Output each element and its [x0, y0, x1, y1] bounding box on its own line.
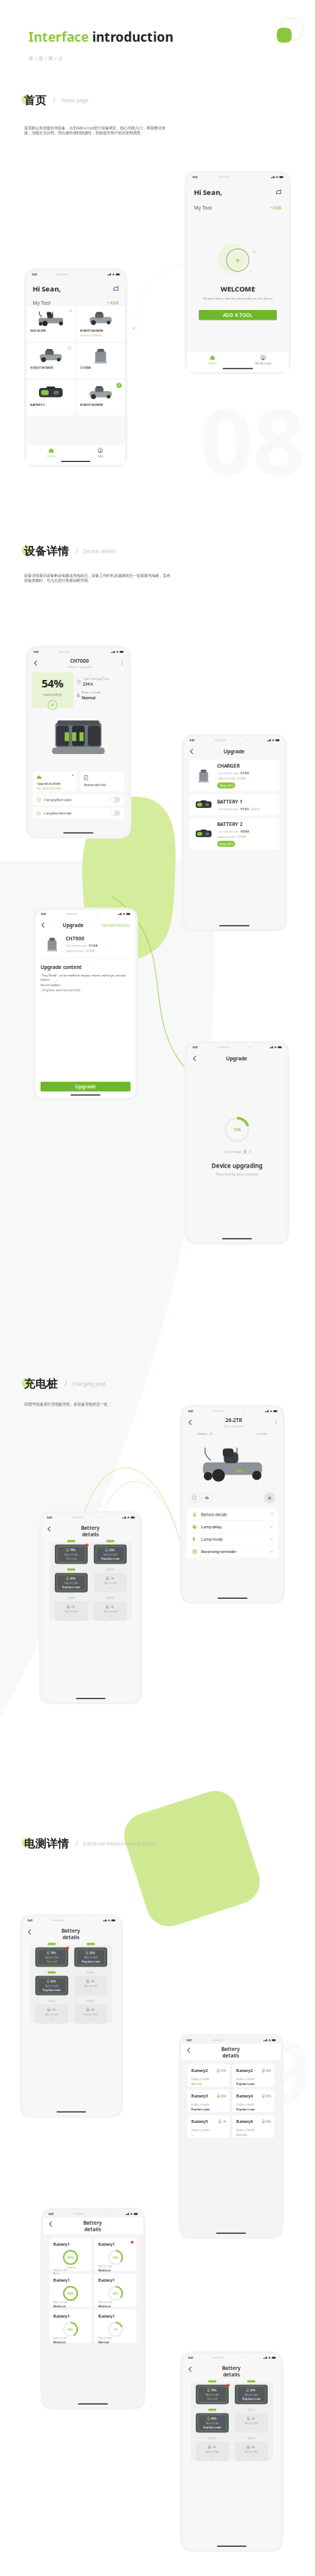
button[interactable]: Battery details: [187, 1509, 278, 1521]
button[interactable]: Battery4: [232, 2090, 274, 2112]
staticText: Current version: [66, 944, 87, 948]
button[interactable]: Battery3: [187, 2090, 229, 2112]
staticText: Battery health: [191, 2102, 209, 2106]
staticText: Battery health: [98, 2337, 112, 2339]
staticText: CH7000: [66, 935, 84, 942]
button[interactable]: ROBOT MOWER: [77, 380, 125, 415]
button[interactable]: Lamp delay: [187, 1521, 278, 1533]
button[interactable]: CHARGER: [189, 760, 279, 791]
staticText: Battery health: [205, 2394, 219, 2396]
button[interactable]: Battery1: [49, 2310, 91, 2343]
button[interactable]: BATTERY 2: [189, 818, 279, 850]
button[interactable]: Reversing reminder: [187, 1546, 278, 1558]
button[interactable]: Back: [49, 2222, 52, 2226]
button[interactable]: Back: [193, 1056, 196, 1061]
button[interactable]: Battery1: [94, 2274, 136, 2307]
staticText: /: [64, 1380, 67, 1388]
staticText: introduction: [92, 28, 173, 45]
staticText: Battery1: [53, 2314, 70, 2319]
staticText: 9:41: [32, 272, 37, 276]
staticText: Battery health: [84, 1985, 98, 1987]
staticText: Battery health: [53, 2269, 67, 2271]
staticText: Lamp delay: [201, 1524, 222, 1530]
staticText: 54%: [42, 676, 63, 691]
button[interactable]: Back: [34, 661, 37, 665]
button[interactable]: Battery2: [232, 2064, 274, 2087]
staticText: Battery health: [98, 2301, 112, 2303]
staticText: 78%: [50, 1951, 56, 1955]
staticText: EGO 26 ZTR: [30, 329, 46, 332]
button[interactable]: Home: [187, 355, 238, 365]
button[interactable]: Upgrade: [40, 1082, 130, 1091]
staticText: --%: [251, 2417, 255, 2421]
staticText: 25%: [220, 2094, 226, 2098]
button[interactable]: Back: [42, 923, 45, 928]
button[interactable]: Battery6: [232, 2115, 274, 2138]
button[interactable]: Notifications: [276, 189, 282, 195]
button[interactable]: Battery1: [94, 2310, 136, 2343]
button[interactable]: Version History: [102, 923, 129, 928]
staticText: - -: [109, 1613, 111, 1617]
staticText: Battery health: [45, 2013, 59, 2016]
button[interactable]: Add a tool: [226, 248, 250, 272]
staticText: Battery6: [236, 2119, 253, 2124]
staticText: 08: [200, 379, 305, 501]
staticText: 13%: [233, 1127, 241, 1132]
staticText: 9:41: [27, 1918, 33, 1922]
staticText: 78%: [211, 2388, 217, 2392]
button[interactable]: Back: [189, 2367, 192, 2372]
button[interactable]: Battery1: [49, 2274, 91, 2307]
staticText: - -: [90, 2016, 92, 2020]
staticText: Finish in 05:22: [43, 693, 61, 697]
button[interactable]: Schedule: [189, 1494, 199, 1502]
button[interactable]: Lock: [263, 1491, 276, 1504]
staticText: Hi Sean,: [194, 188, 222, 197]
staticText: Battery health: [236, 2102, 254, 2106]
staticText: 26%: [89, 1951, 95, 1955]
button[interactable]: Home: [27, 448, 76, 458]
button[interactable]: Upgrade: [217, 782, 235, 788]
staticText: Battery health: [64, 1553, 78, 1556]
staticText: Normal: [98, 2340, 109, 2344]
button[interactable]: Back: [187, 2048, 190, 2053]
staticText: Battery health: [53, 2337, 67, 2339]
button[interactable]: Battery1: [94, 2238, 136, 2271]
button[interactable]: Upgrade: [217, 841, 235, 847]
staticText: Current version: [217, 807, 238, 811]
staticText: ADD A TOOL: [223, 312, 253, 318]
staticText: Electrical measurement details: [83, 1840, 157, 1847]
staticText: Upgrade: [223, 748, 244, 755]
staticText: Charging Reservation: [44, 798, 71, 802]
button[interactable]: ROBOT MOWER: [27, 343, 75, 378]
staticText: Z6型号设备进行充电桩充电，多设备充电状态一览。: [24, 1401, 111, 1407]
button[interactable]: ADD A TOOL: [199, 310, 277, 320]
button[interactable]: Back: [28, 1929, 31, 1934]
staticText: +: [235, 254, 240, 266]
button[interactable]: + ADD: [107, 300, 119, 305]
button[interactable]: EGO 26 ZTR: [27, 306, 75, 341]
button[interactable]: CH7000: [77, 343, 125, 378]
staticText: /: [53, 96, 55, 104]
button[interactable]: My Account: [238, 355, 288, 365]
button[interactable]: Cloud: [202, 1494, 212, 1502]
button[interactable]: + ADD: [270, 205, 282, 210]
staticText: --%: [251, 2445, 255, 2449]
button[interactable]: Battery1: [49, 2238, 91, 2271]
button[interactable]: Info: [76, 448, 125, 458]
button[interactable]: Back: [190, 749, 193, 754]
button[interactable]: Battery5: [187, 2115, 229, 2138]
button[interactable]: Back: [48, 1527, 51, 1531]
staticText: Battery health: [53, 2301, 67, 2303]
staticText: Charging post: [72, 1381, 105, 1387]
button[interactable]: Battery2: [187, 2064, 229, 2087]
button[interactable]: More: [122, 661, 123, 665]
staticText: CHARGER: [217, 762, 240, 769]
button[interactable]: Lamp mode: [187, 1533, 278, 1545]
staticText: Battery4: [236, 2093, 253, 2099]
button[interactable]: BATTERY 1: [189, 794, 279, 815]
button[interactable]: BATTERY 2: [27, 380, 75, 415]
button[interactable]: ROBOT MOWER: [77, 306, 125, 341]
staticText: Normal: [191, 2082, 202, 2086]
button[interactable]: Notifications: [113, 286, 119, 292]
button[interactable]: Back: [189, 1420, 192, 1425]
